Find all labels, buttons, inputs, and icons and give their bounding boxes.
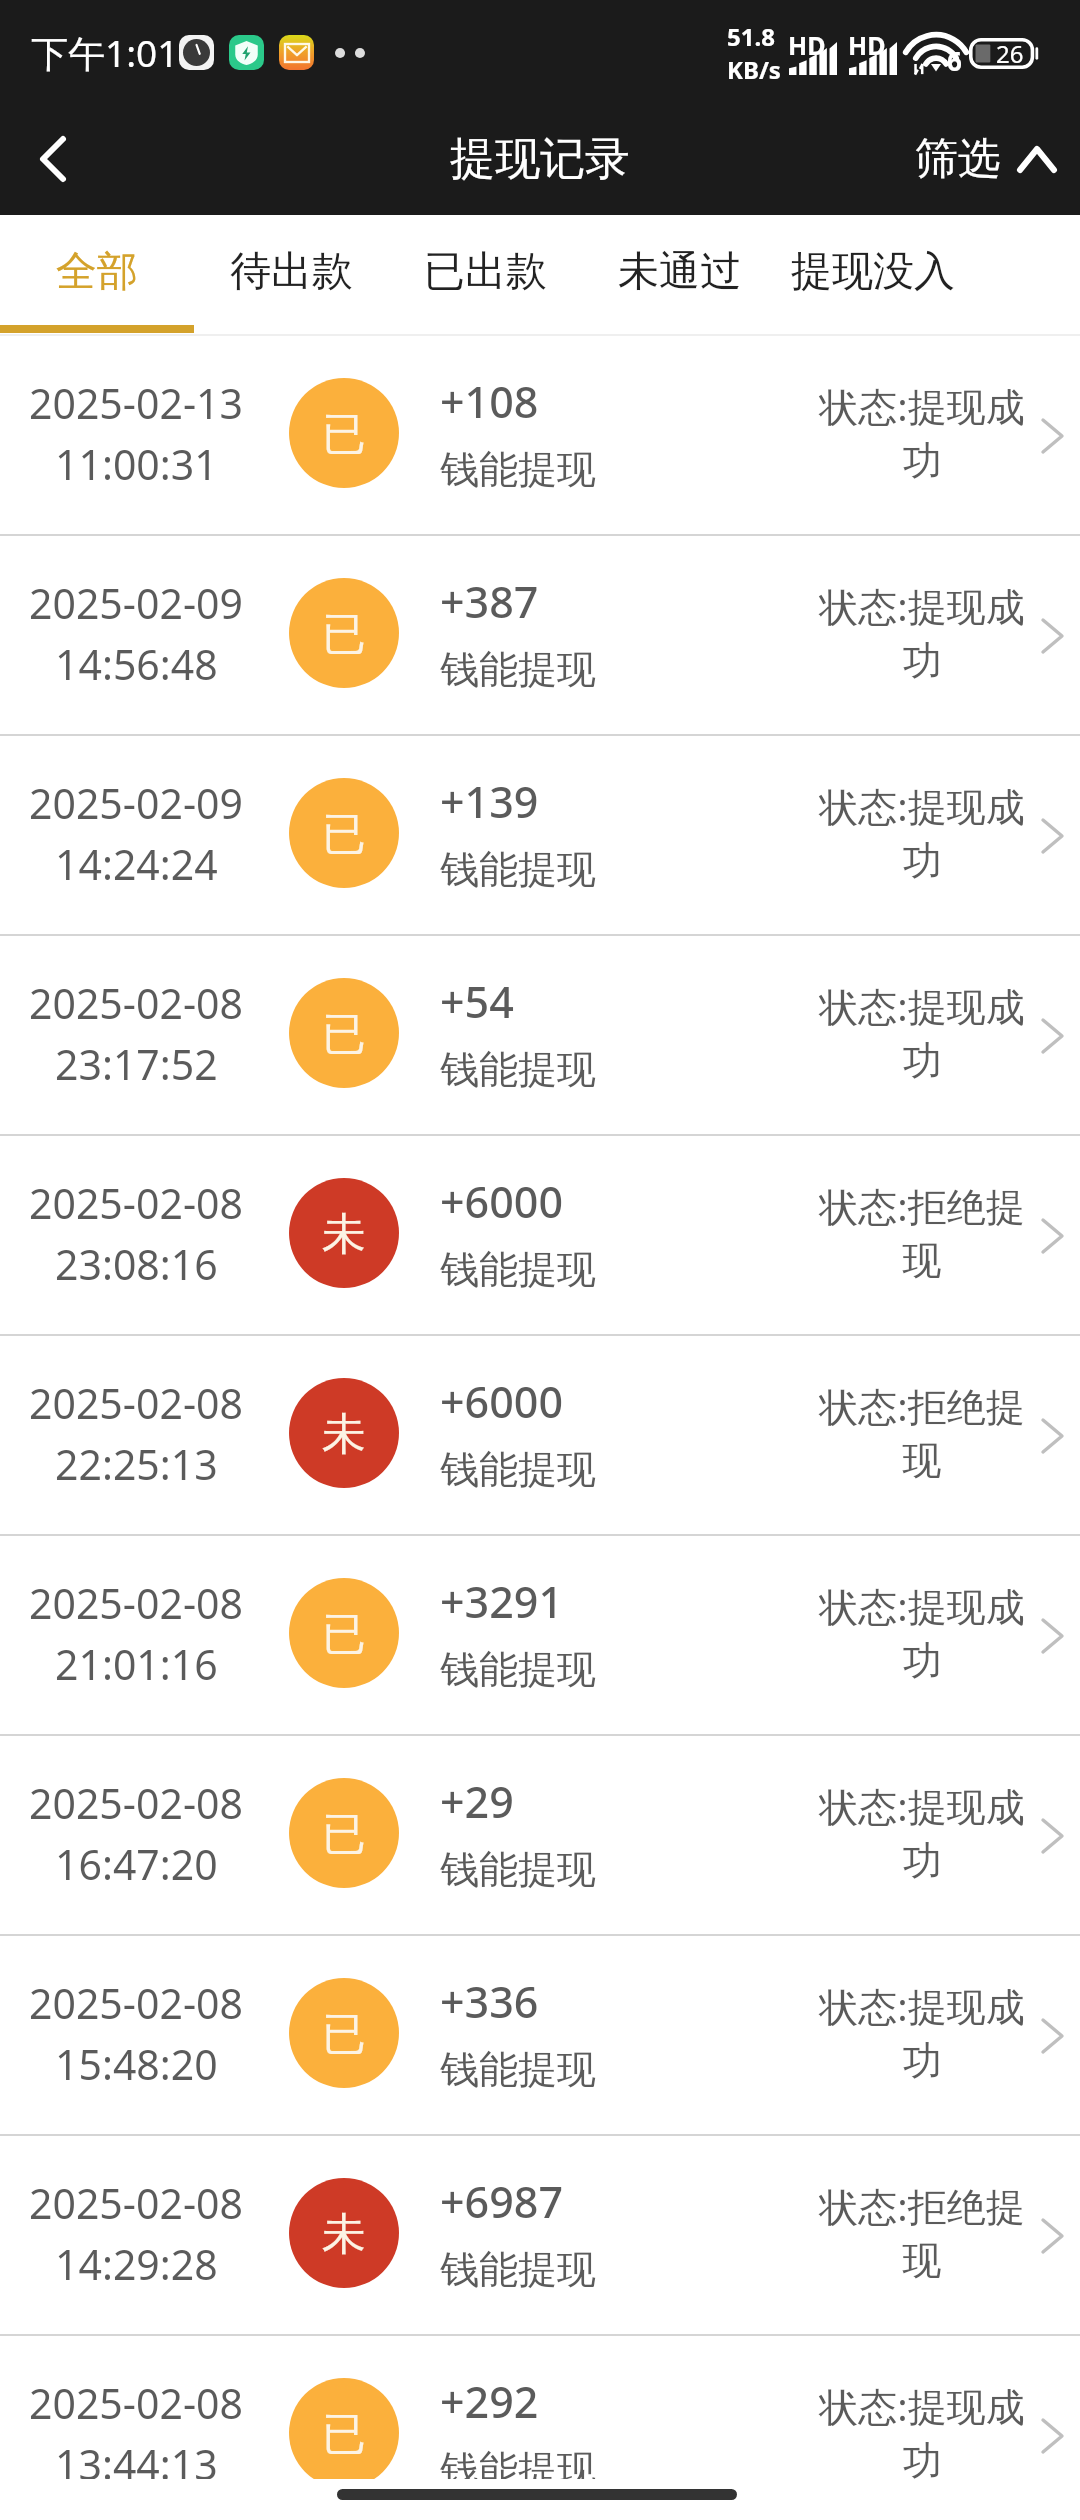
staticText: 状态:提现成功 bbox=[800, 2379, 1044, 2479]
staticText: 状态:提现成功 bbox=[800, 1579, 1044, 1686]
staticText: +6000 bbox=[440, 1172, 563, 1231]
staticText: 钱能提现 bbox=[440, 845, 596, 894]
staticText: +108 bbox=[440, 372, 539, 431]
staticText: 状态:拒绝提现 bbox=[800, 1379, 1044, 1486]
staticText: 钱能提现 bbox=[440, 645, 596, 694]
staticText: +6000 bbox=[440, 1372, 563, 1431]
staticText: 26 bbox=[996, 37, 1024, 68]
staticText: +29 bbox=[440, 1772, 514, 1831]
button[interactable]: 待出款 bbox=[194, 215, 388, 336]
staticText: 已 bbox=[322, 807, 366, 862]
staticText: 51.8 bbox=[727, 20, 775, 53]
staticText: 23:08:16 bbox=[55, 1236, 218, 1292]
staticText: 已 bbox=[322, 1007, 366, 1062]
staticText: 15:48:20 bbox=[55, 2036, 218, 2092]
staticText: 已 bbox=[322, 1807, 366, 1862]
staticText: 下午1:01 bbox=[31, 27, 179, 78]
staticText: 钱能提现 bbox=[440, 2245, 596, 2294]
staticText: 全部 bbox=[56, 246, 138, 298]
staticText: 14:56:48 bbox=[55, 636, 218, 692]
staticText: 状态:提现成功 bbox=[800, 379, 1044, 486]
button[interactable]: 2025-02-09 bbox=[0, 536, 1080, 736]
staticText: 2025-02-13 bbox=[29, 375, 244, 431]
staticText: HD bbox=[788, 28, 826, 62]
staticText: 2025-02-08 bbox=[29, 1975, 244, 2031]
button[interactable]: 2025-02-09 bbox=[0, 736, 1080, 936]
staticText: 2025-02-09 bbox=[29, 775, 244, 831]
staticText: 钱能提现 bbox=[440, 1445, 596, 1494]
staticText: 状态:提现成功 bbox=[800, 579, 1044, 686]
staticText: 16:47:20 bbox=[55, 1836, 218, 1892]
staticText: 钱能提现 bbox=[440, 1845, 596, 1894]
staticText: +387 bbox=[440, 572, 539, 631]
button[interactable]: 提现没入 bbox=[776, 215, 970, 336]
staticText: 2025-02-08 bbox=[29, 1375, 244, 1431]
staticText: +292 bbox=[440, 2372, 539, 2431]
staticText: HD bbox=[848, 28, 886, 62]
staticText: 提现记录 bbox=[450, 131, 630, 188]
staticText: 状态:拒绝提现 bbox=[800, 1179, 1044, 1286]
button[interactable]: 2025-02-08 bbox=[0, 2336, 1080, 2479]
staticText: 状态:提现成功 bbox=[800, 1979, 1044, 2086]
staticText: 23:17:52 bbox=[55, 1036, 218, 1092]
staticText: 已 bbox=[322, 1607, 366, 1662]
staticText: 钱能提现 bbox=[440, 2445, 596, 2479]
staticText: 提现没入 bbox=[791, 246, 955, 298]
button[interactable]: 2025-02-08 bbox=[0, 936, 1080, 1136]
staticText: 2025-02-08 bbox=[29, 2375, 244, 2431]
button[interactable]: 2025-02-08 bbox=[0, 1536, 1080, 1736]
staticText: 钱能提现 bbox=[440, 1045, 596, 1094]
staticText: 待出款 bbox=[230, 246, 353, 298]
staticText: 6 bbox=[947, 43, 962, 78]
staticText: 13:44:13 bbox=[55, 2436, 218, 2479]
staticText: 2025-02-08 bbox=[29, 1575, 244, 1631]
staticText: 已 bbox=[322, 2407, 366, 2462]
staticText: 未 bbox=[322, 2207, 366, 2262]
staticText: 状态:提现成功 bbox=[800, 979, 1044, 1086]
button[interactable]: 2025-02-08 bbox=[0, 1136, 1080, 1336]
staticText: 未 bbox=[322, 1407, 366, 1462]
button[interactable]: 2025-02-08 bbox=[0, 1336, 1080, 1536]
staticText: 2025-02-08 bbox=[29, 1775, 244, 1831]
button[interactable]: 2025-02-13 bbox=[0, 336, 1080, 536]
staticText: 状态:提现成功 bbox=[800, 779, 1044, 886]
staticText: 钱能提现 bbox=[440, 2045, 596, 2094]
staticText: 状态:提现成功 bbox=[800, 1779, 1044, 1886]
staticText: 已 bbox=[322, 2007, 366, 2062]
staticText: 已出款 bbox=[424, 246, 547, 298]
staticText: 钱能提现 bbox=[440, 445, 596, 494]
staticText: 22:25:13 bbox=[55, 1436, 218, 1492]
staticText: +139 bbox=[440, 772, 539, 831]
staticText: +54 bbox=[440, 972, 514, 1031]
button[interactable]: 未通过 bbox=[582, 215, 776, 336]
button[interactable]: 全部 bbox=[0, 215, 194, 336]
staticText: +6987 bbox=[440, 2172, 563, 2231]
staticText: KB/s bbox=[727, 53, 781, 86]
staticText: 14:24:24 bbox=[55, 836, 218, 892]
staticText: 钱能提现 bbox=[440, 1645, 596, 1694]
button[interactable]: 筛选 bbox=[915, 132, 1054, 186]
button[interactable]: Back bbox=[0, 105, 110, 213]
button[interactable]: 2025-02-08 bbox=[0, 1936, 1080, 2136]
button[interactable]: 已出款 bbox=[388, 215, 582, 336]
staticText: 21:01:16 bbox=[55, 1636, 218, 1692]
staticText: +3291 bbox=[440, 1572, 563, 1631]
staticText: 2025-02-09 bbox=[29, 575, 244, 631]
staticText: 未通过 bbox=[618, 246, 741, 298]
staticText: 筛选 bbox=[915, 132, 1001, 186]
staticText: 2025-02-08 bbox=[29, 1175, 244, 1231]
staticText: 14:29:28 bbox=[55, 2236, 218, 2292]
staticText: 已 bbox=[322, 407, 366, 462]
staticText: 钱能提现 bbox=[440, 1245, 596, 1294]
staticText: 2025-02-08 bbox=[29, 975, 244, 1031]
button[interactable]: 2025-02-08 bbox=[0, 2136, 1080, 2336]
staticText: 11:00:31 bbox=[55, 436, 218, 492]
button[interactable]: 2025-02-08 bbox=[0, 1736, 1080, 1936]
staticText: 2025-02-08 bbox=[29, 2175, 244, 2231]
staticText: +336 bbox=[440, 1972, 539, 2031]
staticText: 已 bbox=[322, 607, 366, 662]
staticText: 状态:拒绝提现 bbox=[800, 2179, 1044, 2286]
staticText: 未 bbox=[322, 1207, 366, 1262]
